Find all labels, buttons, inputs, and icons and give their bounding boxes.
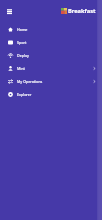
staticText: Deploy [17, 53, 29, 58]
button[interactable]: Deploy [0, 49, 102, 62]
staticText: Breakfast [68, 7, 96, 15]
button[interactable]: Explorer [0, 88, 102, 101]
button[interactable]: Breakfast [61, 7, 96, 15]
button[interactable]: Open navigation menu [5, 7, 13, 15]
button[interactable]: Home [0, 23, 102, 36]
button[interactable]: My Operations [0, 75, 102, 88]
staticText: Sport [17, 40, 27, 45]
button[interactable]: Sport [0, 36, 102, 49]
button[interactable]: Mint [0, 62, 102, 75]
staticText: My Operations [17, 79, 43, 84]
staticText: Explorer [17, 92, 32, 97]
staticText: Mint [17, 66, 25, 71]
staticText: Home [17, 27, 28, 32]
